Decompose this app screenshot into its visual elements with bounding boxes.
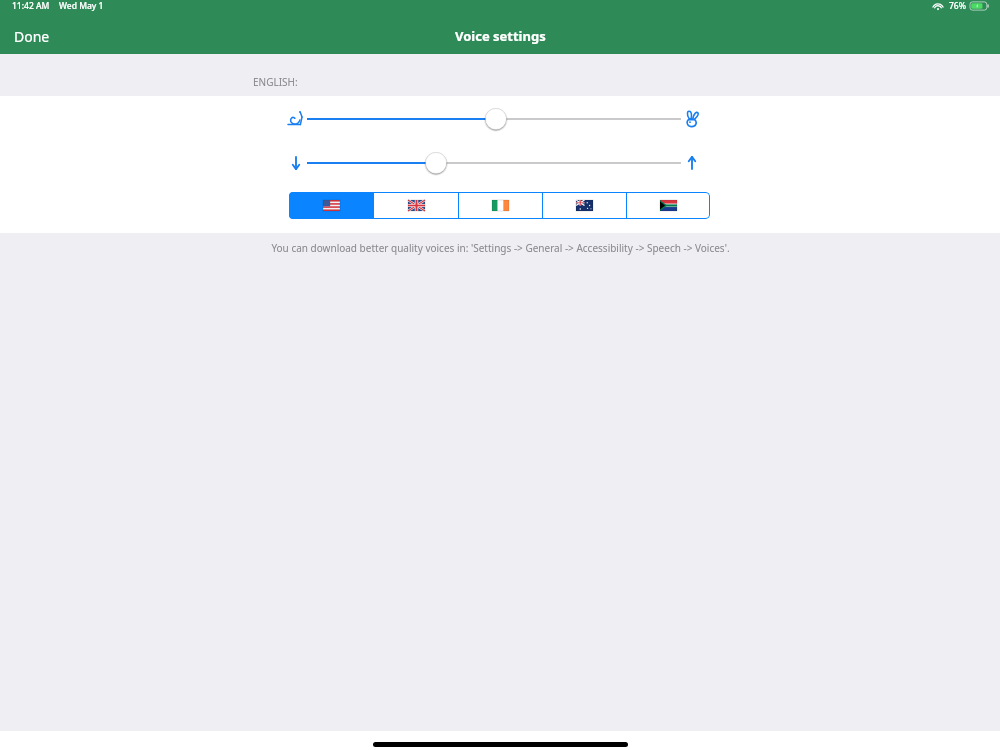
button[interactable]: Voice accent US [289,192,373,219]
staticText: Voice settings [455,27,546,45]
staticText: 11:42 AM [12,0,50,12]
staticText: 76% [949,0,966,12]
button[interactable]: Higher pitch [681,152,703,174]
button[interactable]: Faster speech rate [681,108,703,130]
button[interactable] [307,104,681,134]
staticText: Wed May 1 [59,0,104,12]
button[interactable]: Voice accent AU [543,192,626,219]
button[interactable]: Slower speech rate [285,108,307,130]
button[interactable]: Voice accent UK [374,192,458,219]
staticText: You can download better quality voices i… [271,241,730,255]
button[interactable] [307,148,681,178]
staticText: ENGLISH: [253,75,298,89]
button[interactable]: Voice accent IE [459,192,542,219]
button[interactable]: Done [0,21,64,52]
staticText: Done [14,27,50,46]
button[interactable]: Voice accent ZA [627,192,710,219]
button[interactable]: Lower pitch [285,152,307,174]
